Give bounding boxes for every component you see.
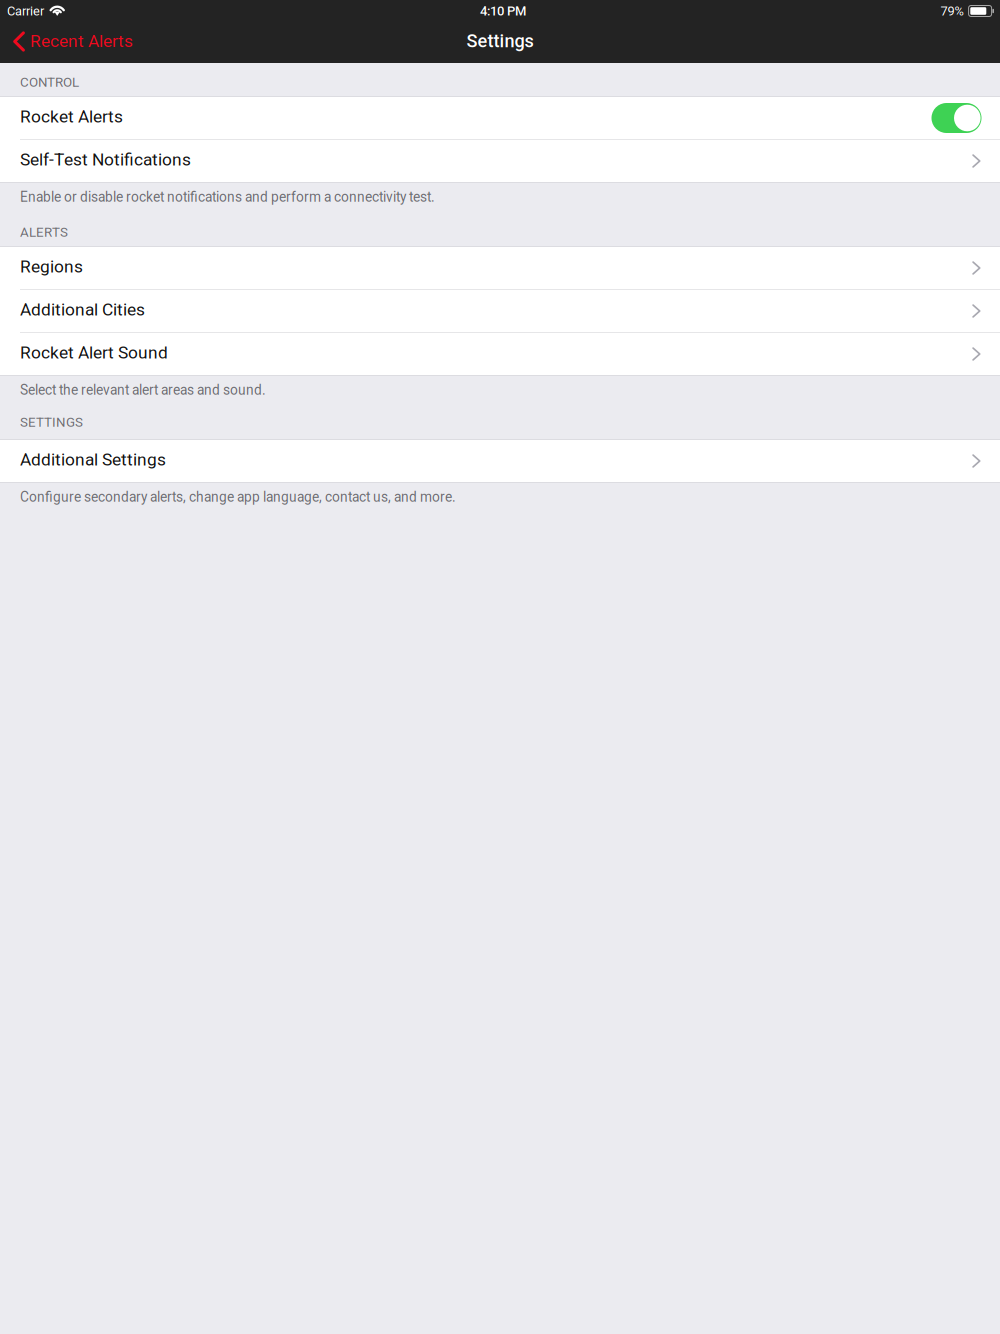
staticText: 4:10 PM [480,3,526,19]
staticText: Additional Cities [20,299,145,320]
button[interactable]: Regions [0,247,1000,289]
staticText: SETTINGS [20,414,83,430]
staticText: Rocket Alert Sound [20,342,168,363]
staticText: Configure secondary alerts, change app l… [20,489,456,505]
staticText: Rocket Alerts [20,106,123,127]
staticText: Recent Alerts [30,31,133,51]
staticText: Additional Settings [20,449,166,470]
staticText: Regions [20,256,83,277]
staticText: 79% [941,3,964,18]
staticText: Select the relevant alert areas and soun… [20,382,266,398]
staticText: Settings [466,30,533,52]
button[interactable]: Additional Settings [0,440,1000,482]
button[interactable]: Rocket Alert Sound [0,333,1000,375]
button[interactable]: Rocket Alerts, on [931,103,981,133]
button[interactable]: Self-Test Notifications [0,140,1000,182]
staticText: ALERTS [20,224,68,240]
staticText: Enable or disable rocket notifications a… [20,189,435,205]
button[interactable]: Rocket Alerts [0,97,1000,139]
staticText: CONTROL [20,74,79,90]
staticText: Self-Test Notifications [20,149,191,170]
button[interactable]: Recent Alerts [0,22,145,63]
staticText: Carrier [7,3,44,18]
button[interactable]: Additional Cities [0,290,1000,332]
